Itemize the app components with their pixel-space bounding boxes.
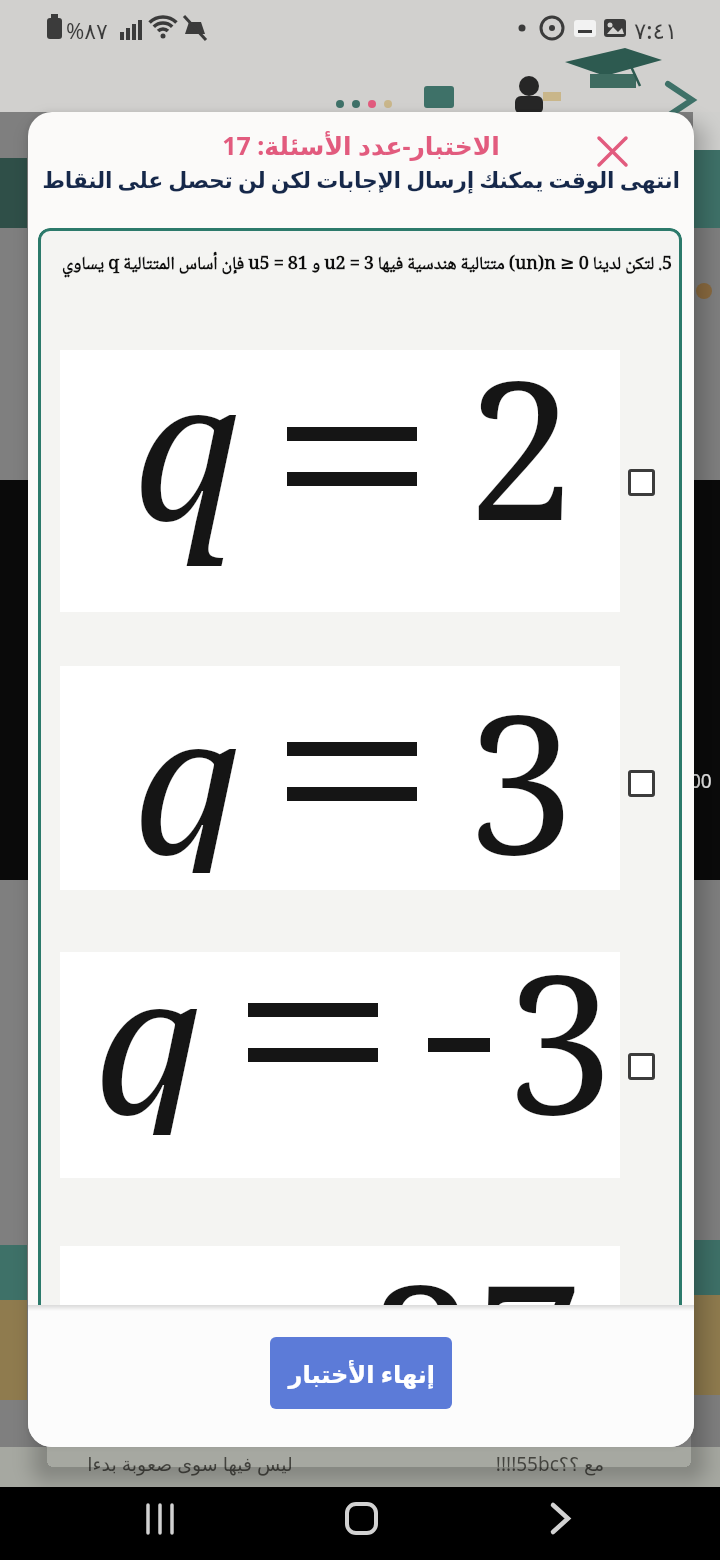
- staticText: q: [133, 649, 241, 873]
- staticText: 3: [506, 909, 614, 1135]
- staticText: ٧:٤١: [634, 14, 678, 45]
- staticText: q: [38, 1219, 143, 1330]
- staticText: %٨٧: [66, 15, 108, 45]
- staticText: q: [94, 909, 202, 1135]
- staticText: ليس فيها سوى صعوبة بدءا: [80, 1451, 300, 1477]
- staticText: إنهاء الأختبار: [288, 1357, 435, 1390]
- staticText: مع ؟؟55bc!!!!: [470, 1451, 630, 1477]
- staticText: 27: [369, 1219, 584, 1330]
- staticText: 00: [690, 768, 712, 794]
- staticText: الاختبار-عدد الأسئلة: 17: [28, 128, 694, 162]
- staticText: 5. لتكن لدينا ⁦(un)n ≥ 0⁩ متتالية هندسية…: [46, 250, 672, 281]
- staticText: 3: [467, 649, 575, 873]
- staticText: q: [133, 315, 241, 577]
- staticText: انتهى الوقت يمكنك إرسال الإجابات لكن لن …: [28, 164, 694, 194]
- staticText: 2: [467, 315, 575, 577]
